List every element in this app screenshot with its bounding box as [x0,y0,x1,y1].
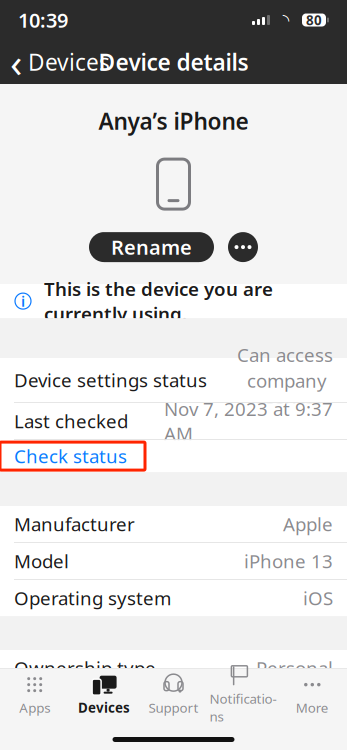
staticText: Support [148,699,198,716]
staticText: 80 [306,11,322,29]
staticText: iOS [303,586,333,610]
button[interactable]: More [278,672,347,718]
button[interactable]: Notifications [208,672,278,718]
staticText: Ownership type [14,656,156,680]
staticText: iPhone 13 [244,549,333,573]
button[interactable]: Devices [69,672,139,718]
staticText: company resources [247,368,333,418]
staticText: i [21,291,25,311]
button[interactable]: More options [228,232,258,262]
staticText: ◝ [282,10,289,30]
staticText: Operating system [14,586,171,610]
staticText: Model [14,549,69,573]
staticText: Can access [237,342,333,367]
button[interactable]: ‹ [0,40,120,84]
staticText: This is the device you are currently usi… [44,276,273,326]
staticText: Check status [14,444,127,468]
staticText: Devices [28,47,110,77]
staticText: Anya’s iPhone [98,106,248,136]
staticText: Apple [283,512,333,536]
button[interactable]: Check status [0,442,145,470]
button[interactable]: Apps [0,672,69,718]
staticText: Last checked [14,409,128,433]
staticText: Device details [98,47,248,77]
staticText: Personal [256,656,333,680]
staticText: 10:39 [18,7,68,33]
button[interactable]: Rename [89,232,214,262]
staticText: Rename [111,234,192,260]
staticText: Device settings status [14,368,207,392]
staticText: ‹ [10,35,22,88]
staticText: More [296,699,329,716]
staticText: Apps [19,699,50,716]
staticText: Devices [78,699,130,716]
staticText: Notifications [209,690,276,725]
button[interactable]: Support [139,672,208,718]
staticText: Nov 7, 2023 at 9:37 AM [164,396,333,446]
staticText: Manufacturer [14,512,135,536]
